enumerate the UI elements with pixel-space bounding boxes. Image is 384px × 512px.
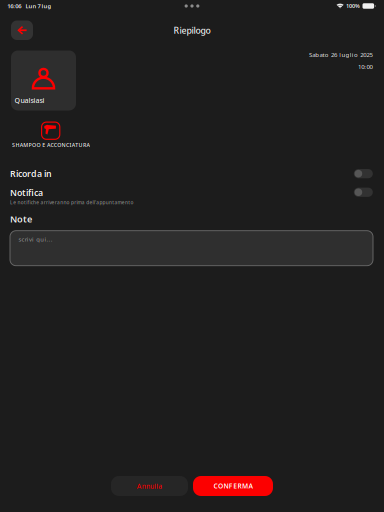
staticText: 10:00: [358, 63, 372, 71]
staticText: Lun 7 lug: [25, 2, 51, 10]
staticText: Qualsiasi: [15, 95, 45, 105]
staticText: 16:06: [7, 2, 21, 10]
button[interactable]: Annulla: [111, 476, 188, 496]
button[interactable]: scrivi qui...: [10, 231, 373, 266]
button[interactable]: Notifica: [0, 187, 384, 206]
staticText: Le notifiche arriveranno prima dell'appu…: [10, 199, 133, 206]
staticText: scrivi qui...: [18, 235, 53, 243]
staticText: Notifica: [10, 187, 43, 199]
staticText: Annulla: [137, 481, 162, 491]
staticText: Note: [10, 213, 32, 225]
button[interactable]: Indietro: [11, 20, 33, 40]
staticText: Riepilogo: [173, 24, 210, 36]
staticText: Ricorda in: [10, 168, 52, 180]
button[interactable]: CONFERMA: [193, 476, 273, 496]
button[interactable]: Qualsiasi: [11, 50, 76, 110]
staticText: Sabato 26 luglio 2025: [309, 50, 372, 59]
staticText: SHAMPOO E ACCONCIATURA: [12, 141, 89, 149]
staticText: CONFERMA: [214, 481, 252, 491]
button[interactable]: Ricorda in: [0, 168, 384, 180]
staticText: 100%: [346, 2, 360, 10]
